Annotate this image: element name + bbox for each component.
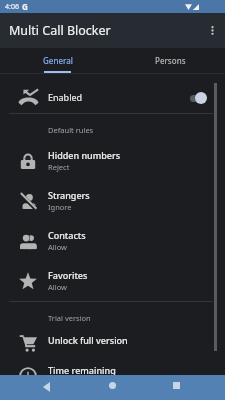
button[interactable]: Time remaining bbox=[0, 356, 225, 396]
button[interactable]: Unlock full version bbox=[0, 329, 225, 356]
staticText: Trial version bbox=[48, 313, 91, 323]
staticText: Contacts bbox=[48, 229, 86, 241]
button[interactable]: Recent apps bbox=[159, 373, 193, 398]
button[interactable]: Hidden numbers bbox=[0, 141, 225, 181]
button[interactable]: More options bbox=[199, 13, 225, 48]
staticText: Default rules bbox=[48, 125, 94, 135]
button[interactable]: Favorites bbox=[0, 261, 225, 301]
staticText: Hidden numbers bbox=[48, 149, 121, 161]
button[interactable]: Back bbox=[29, 373, 63, 398]
staticText: Reject bbox=[48, 162, 70, 172]
staticText: Allow bbox=[48, 282, 67, 292]
button[interactable]: Strangers bbox=[0, 181, 225, 221]
staticText: Persons bbox=[155, 55, 186, 66]
button[interactable]: Home bbox=[95, 373, 129, 398]
staticText: G bbox=[22, 1, 28, 12]
staticText: Time remaining bbox=[48, 364, 116, 376]
button[interactable]: Contacts bbox=[0, 221, 225, 261]
button[interactable]: Enabled bbox=[0, 74, 225, 113]
staticText: General bbox=[43, 55, 73, 66]
staticText: Unlock full version bbox=[48, 334, 128, 346]
staticText: 4:06 bbox=[5, 2, 19, 12]
staticText: Strangers bbox=[48, 189, 90, 201]
staticText: Enabled bbox=[48, 91, 83, 103]
button[interactable]: Persons bbox=[114, 48, 225, 74]
staticText: Multi Call Blocker bbox=[9, 22, 111, 39]
staticText: Favorites bbox=[48, 269, 88, 281]
staticText: Ignore bbox=[48, 202, 72, 212]
button[interactable]: General bbox=[2, 48, 114, 74]
staticText: Allow bbox=[48, 242, 67, 252]
staticText: 14 days bbox=[48, 377, 75, 387]
